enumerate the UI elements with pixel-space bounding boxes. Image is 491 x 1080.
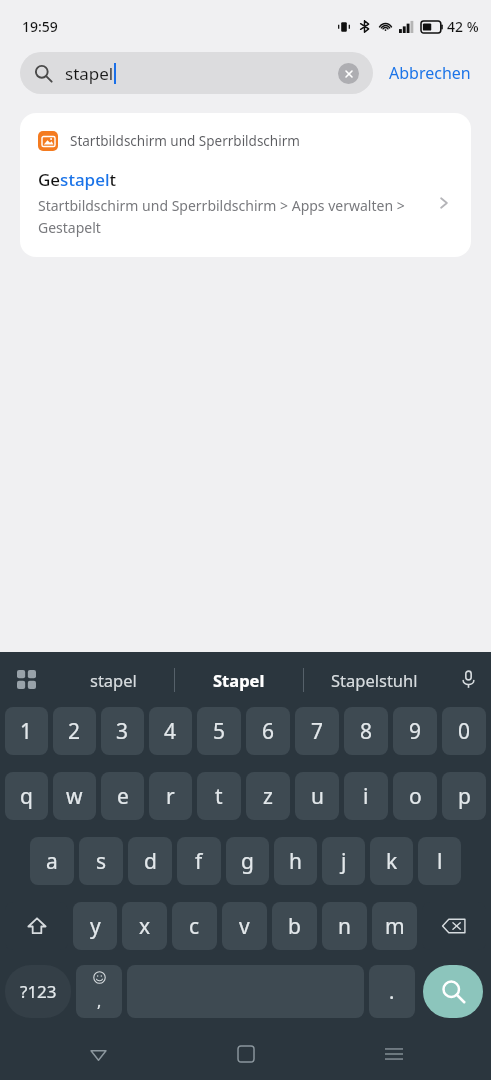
staticText: i — [363, 782, 369, 811]
staticText: a — [46, 847, 58, 876]
button[interactable]: k — [370, 837, 413, 885]
staticText: stapel — [65, 62, 114, 85]
staticText: 4 — [164, 717, 177, 746]
button[interactable]: Stapelstuhl — [304, 652, 445, 707]
button[interactable]: z — [246, 772, 290, 820]
staticText: o — [409, 782, 422, 811]
staticText: q — [20, 782, 33, 811]
button[interactable]: . — [369, 965, 415, 1018]
button[interactable]: 5 — [197, 707, 241, 755]
button[interactable]: ?123 — [5, 965, 71, 1018]
button[interactable]: b — [272, 902, 317, 950]
button[interactable]: s — [79, 837, 123, 885]
button[interactable]: Stapel — [175, 652, 303, 707]
button[interactable]: 3 — [101, 707, 144, 755]
staticText: 1 — [20, 717, 33, 746]
staticText: t — [215, 782, 223, 811]
button[interactable]: a — [30, 837, 74, 885]
button[interactable]: d — [128, 837, 172, 885]
staticText: 42 % — [447, 17, 479, 36]
staticText: l — [437, 847, 443, 876]
button[interactable]: x — [122, 902, 167, 950]
button[interactable]: j — [322, 837, 365, 885]
button[interactable]: 8 — [344, 707, 388, 755]
button[interactable]: 0 — [442, 707, 486, 755]
button[interactable]: 2 — [53, 707, 96, 755]
button[interactable]: Shift — [5, 902, 68, 950]
button[interactable]: Emoji and comma — [76, 965, 122, 1018]
button[interactable]: h — [274, 837, 317, 885]
button[interactable]: Startbildschirm und Sperrbildschirm — [20, 113, 471, 257]
button[interactable]: q — [5, 772, 48, 820]
staticText: 5 — [213, 717, 226, 746]
button[interactable]: Back — [72, 1028, 124, 1080]
button[interactable]: f — [177, 837, 221, 885]
button[interactable]: p — [442, 772, 486, 820]
staticText: ?123 — [20, 980, 57, 1003]
staticText: 7 — [311, 717, 324, 746]
staticText: p — [458, 782, 471, 811]
staticText: c — [189, 912, 200, 941]
staticText: Gestapelt — [38, 168, 117, 191]
staticText: x — [139, 912, 151, 941]
staticText: Startbildschirm und Sperrbildschirm > Ap… — [38, 196, 425, 237]
staticText: , — [97, 990, 102, 1012]
button[interactable]: 4 — [149, 707, 192, 755]
button[interactable]: Clear text — [338, 63, 359, 84]
button[interactable]: 6 — [246, 707, 290, 755]
staticText: y — [90, 912, 101, 941]
button[interactable]: 1 — [5, 707, 48, 755]
button[interactable]: Search — [423, 965, 483, 1018]
staticText: . — [389, 978, 395, 1005]
button[interactable]: o — [393, 772, 437, 820]
staticText: r — [166, 782, 175, 811]
staticText: 2 — [68, 717, 81, 746]
button[interactable]: e — [101, 772, 144, 820]
staticText: b — [288, 912, 301, 941]
button[interactable]: r — [149, 772, 192, 820]
staticText: f — [195, 847, 203, 876]
button[interactable]: g — [226, 837, 269, 885]
button[interactable]: 7 — [295, 707, 339, 755]
button[interactable]: Keyboard options — [0, 652, 52, 707]
button[interactable]: v — [222, 902, 267, 950]
button[interactable]: n — [322, 902, 367, 950]
staticText: 9 — [409, 717, 422, 746]
staticText: m — [385, 912, 405, 941]
button[interactable]: i — [344, 772, 388, 820]
staticText: u — [311, 782, 324, 811]
button[interactable]: Home — [220, 1028, 272, 1080]
staticText: h — [289, 847, 302, 876]
staticText: n — [338, 912, 351, 941]
button[interactable]: y — [73, 902, 117, 950]
staticText: s — [96, 847, 107, 876]
button[interactable]: 9 — [393, 707, 437, 755]
staticText: d — [144, 847, 157, 876]
button[interactable]: t — [197, 772, 241, 820]
staticText: z — [263, 782, 273, 811]
staticText: v — [239, 912, 250, 941]
staticText: stapel — [90, 669, 137, 691]
button[interactable]: Recent apps — [368, 1028, 420, 1080]
button[interactable]: u — [295, 772, 339, 820]
button[interactable]: stapel — [20, 52, 373, 94]
button[interactable]: Abbrechen — [373, 58, 471, 88]
button[interactable]: m — [372, 902, 417, 950]
staticText: 6 — [262, 717, 275, 746]
staticText: e — [117, 782, 129, 811]
staticText: g — [241, 847, 254, 876]
staticText: Stapelstuhl — [331, 669, 418, 691]
button[interactable]: stapel — [52, 652, 174, 707]
staticText: w — [66, 782, 83, 811]
button[interactable]: c — [172, 902, 217, 950]
staticText: 3 — [116, 717, 129, 746]
staticText: Startbildschirm und Sperrbildschirm — [70, 132, 300, 150]
staticText: j — [341, 847, 347, 876]
staticText: 19:59 — [22, 17, 58, 36]
button[interactable]: Voice input — [445, 652, 491, 707]
button[interactable]: Backspace — [422, 902, 486, 950]
button[interactable]: l — [418, 837, 461, 885]
staticText: Stapel — [213, 669, 265, 691]
button[interactable]: w — [53, 772, 96, 820]
